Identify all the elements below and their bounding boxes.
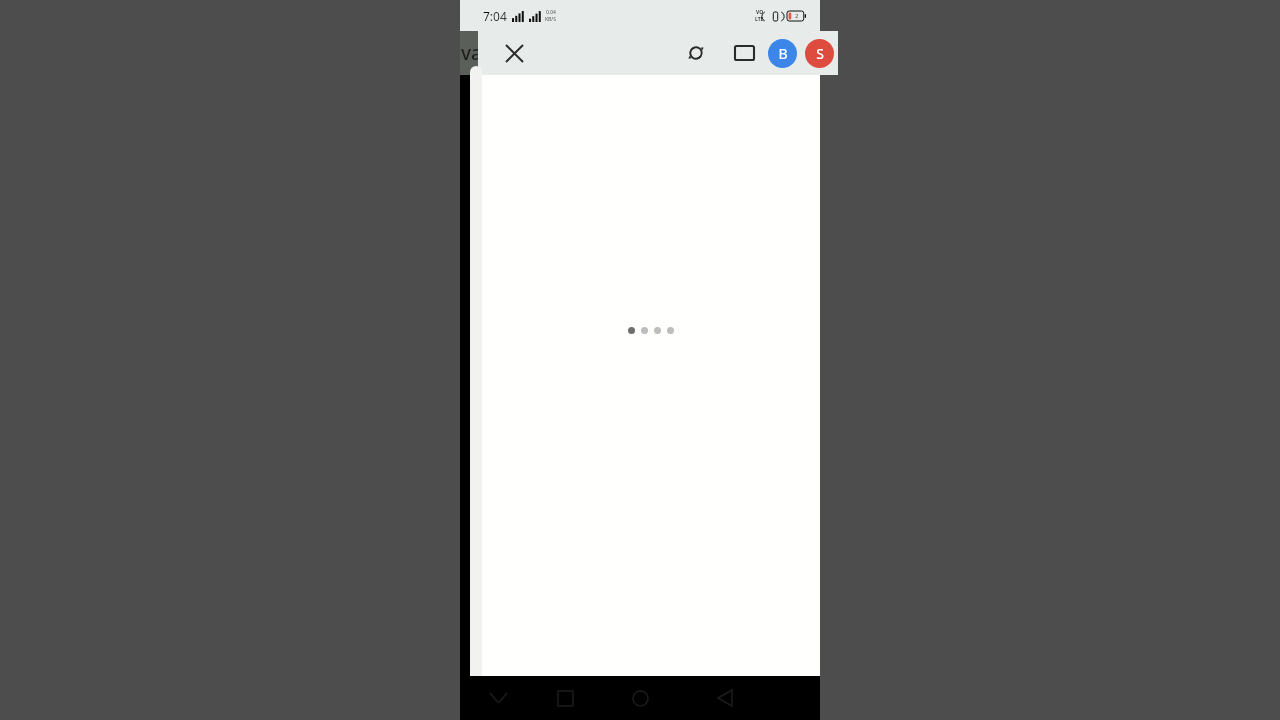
staticText: B [778,44,788,63]
staticText: va [461,40,482,66]
button[interactable]: Close [494,33,534,73]
staticText: 2 [795,12,799,20]
staticText: 0.04 [546,9,556,16]
button[interactable]: Refresh [674,31,718,75]
button[interactable]: Account B [768,39,797,68]
staticText: S [816,44,824,63]
staticText: LTE [755,16,764,23]
button[interactable]: Back [697,676,753,720]
staticText: 7:04 [483,8,507,24]
staticText: KB/S [545,16,556,23]
button[interactable]: Recent apps [537,676,593,720]
button[interactable]: Home [612,676,668,720]
button[interactable]: Account S [805,39,834,68]
button[interactable]: Tabs [722,31,766,75]
staticText: VO [756,9,764,16]
